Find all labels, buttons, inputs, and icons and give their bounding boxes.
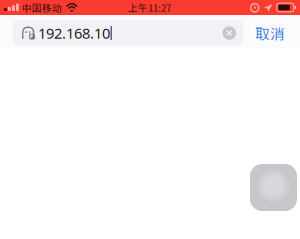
staticText: 取消 <box>255 22 285 44</box>
button[interactable]: 取消 <box>243 20 287 46</box>
staticText: 192.168.10 <box>38 23 110 43</box>
staticText: 上午11:27 <box>128 0 171 14</box>
button[interactable]: AssistiveTouch <box>250 164 297 211</box>
staticText: 中国移动 <box>22 0 62 14</box>
